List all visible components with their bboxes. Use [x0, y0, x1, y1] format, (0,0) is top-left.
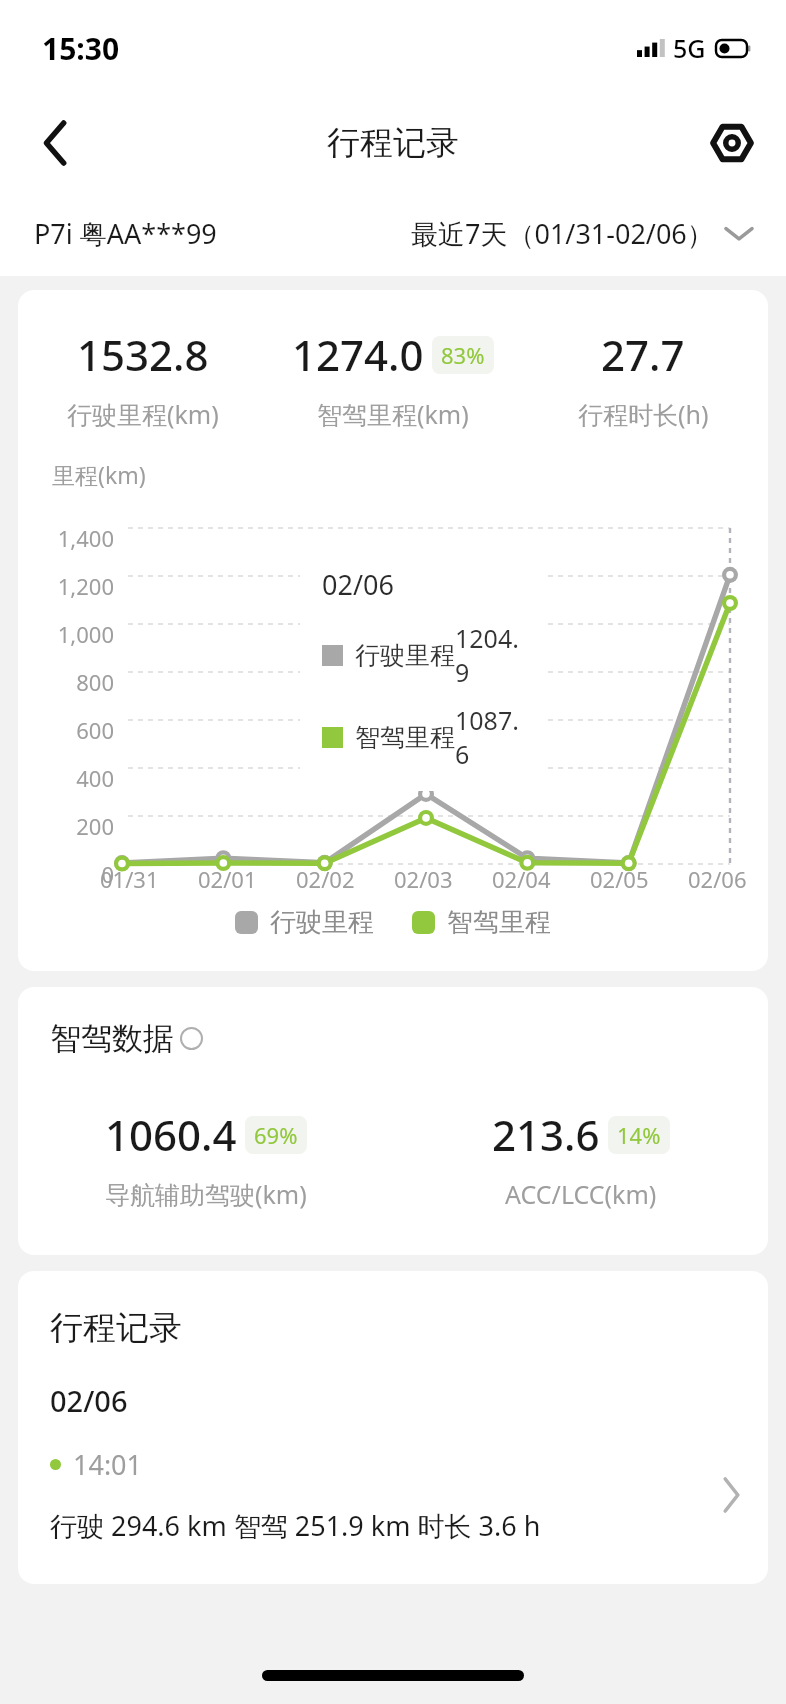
staticText: 智驾里程 [355, 722, 455, 753]
button[interactable]: 14:01 [18, 1446, 768, 1544]
staticText: 里程(km) [52, 459, 146, 490]
staticText: 02/03 [394, 864, 453, 894]
staticText: 02/06 [688, 864, 747, 894]
staticText: 智驾数据 [50, 1019, 174, 1058]
staticText: 导航辅助驾驶(km) [105, 1177, 307, 1211]
staticText: 1,400 [57, 523, 114, 553]
staticText: 02/05 [590, 864, 649, 894]
staticText: 最近7天（01/31-02/06） [411, 215, 714, 252]
staticText: 智驾里程(km) [317, 397, 469, 431]
button[interactable]: Back [26, 113, 86, 173]
staticText: 行驶里程(km) [67, 397, 219, 431]
staticText: 行程记录 [327, 122, 459, 164]
staticText: 14:01 [73, 1446, 143, 1483]
staticText: 1532.8 [77, 326, 209, 383]
staticText: 02/01 [198, 864, 257, 894]
staticText: 行驶里程 [355, 640, 455, 671]
button[interactable]: 智驾里程 [412, 906, 551, 939]
staticText: 400 [76, 763, 114, 793]
staticText: 1204.9 [455, 621, 526, 689]
button[interactable]: 智驾数据 [50, 1019, 203, 1058]
staticText: 15:30 [42, 28, 120, 69]
staticText: 1087.6 [455, 703, 526, 771]
staticText: P7i 粤AA***99 [34, 215, 217, 252]
staticText: 智驾里程 [447, 906, 551, 939]
staticText: 83% [441, 340, 485, 370]
staticText: 200 [76, 811, 114, 841]
staticText: 01/31 [100, 864, 159, 894]
staticText: 行程时长(h) [578, 397, 709, 431]
staticText: 02/06 [50, 1381, 128, 1420]
other: Help [180, 1027, 203, 1050]
staticText: 行程记录 [50, 1307, 182, 1349]
staticText: 5G [673, 31, 706, 65]
staticText: 600 [76, 715, 114, 745]
button[interactable]: 行驶里程 [235, 906, 374, 939]
staticText: 213.6 [492, 1106, 600, 1163]
staticText: 行驶 294.6 km 智驾 251.9 km 时长 3.6 h [50, 1507, 541, 1544]
staticText: 02/02 [296, 864, 355, 894]
staticText: 27.7 [601, 326, 685, 383]
staticText: 行驶里程 [270, 906, 374, 939]
staticText: 1060.4 [105, 1106, 237, 1163]
staticText: 14% [617, 1120, 661, 1150]
staticText: 0 [101, 859, 114, 889]
staticText: 1274.0 [292, 326, 424, 383]
staticText: 1,000 [57, 619, 114, 649]
staticText: 02/04 [492, 864, 551, 894]
staticText: 02/06 [322, 566, 394, 603]
staticText: 1,200 [57, 571, 114, 601]
staticText: ACC/LCC(km) [505, 1177, 657, 1211]
staticText: 800 [76, 667, 114, 697]
button[interactable]: Settings [702, 113, 762, 173]
button[interactable]: 最近7天（01/31-02/06） [411, 215, 752, 252]
staticText: 69% [254, 1120, 298, 1150]
